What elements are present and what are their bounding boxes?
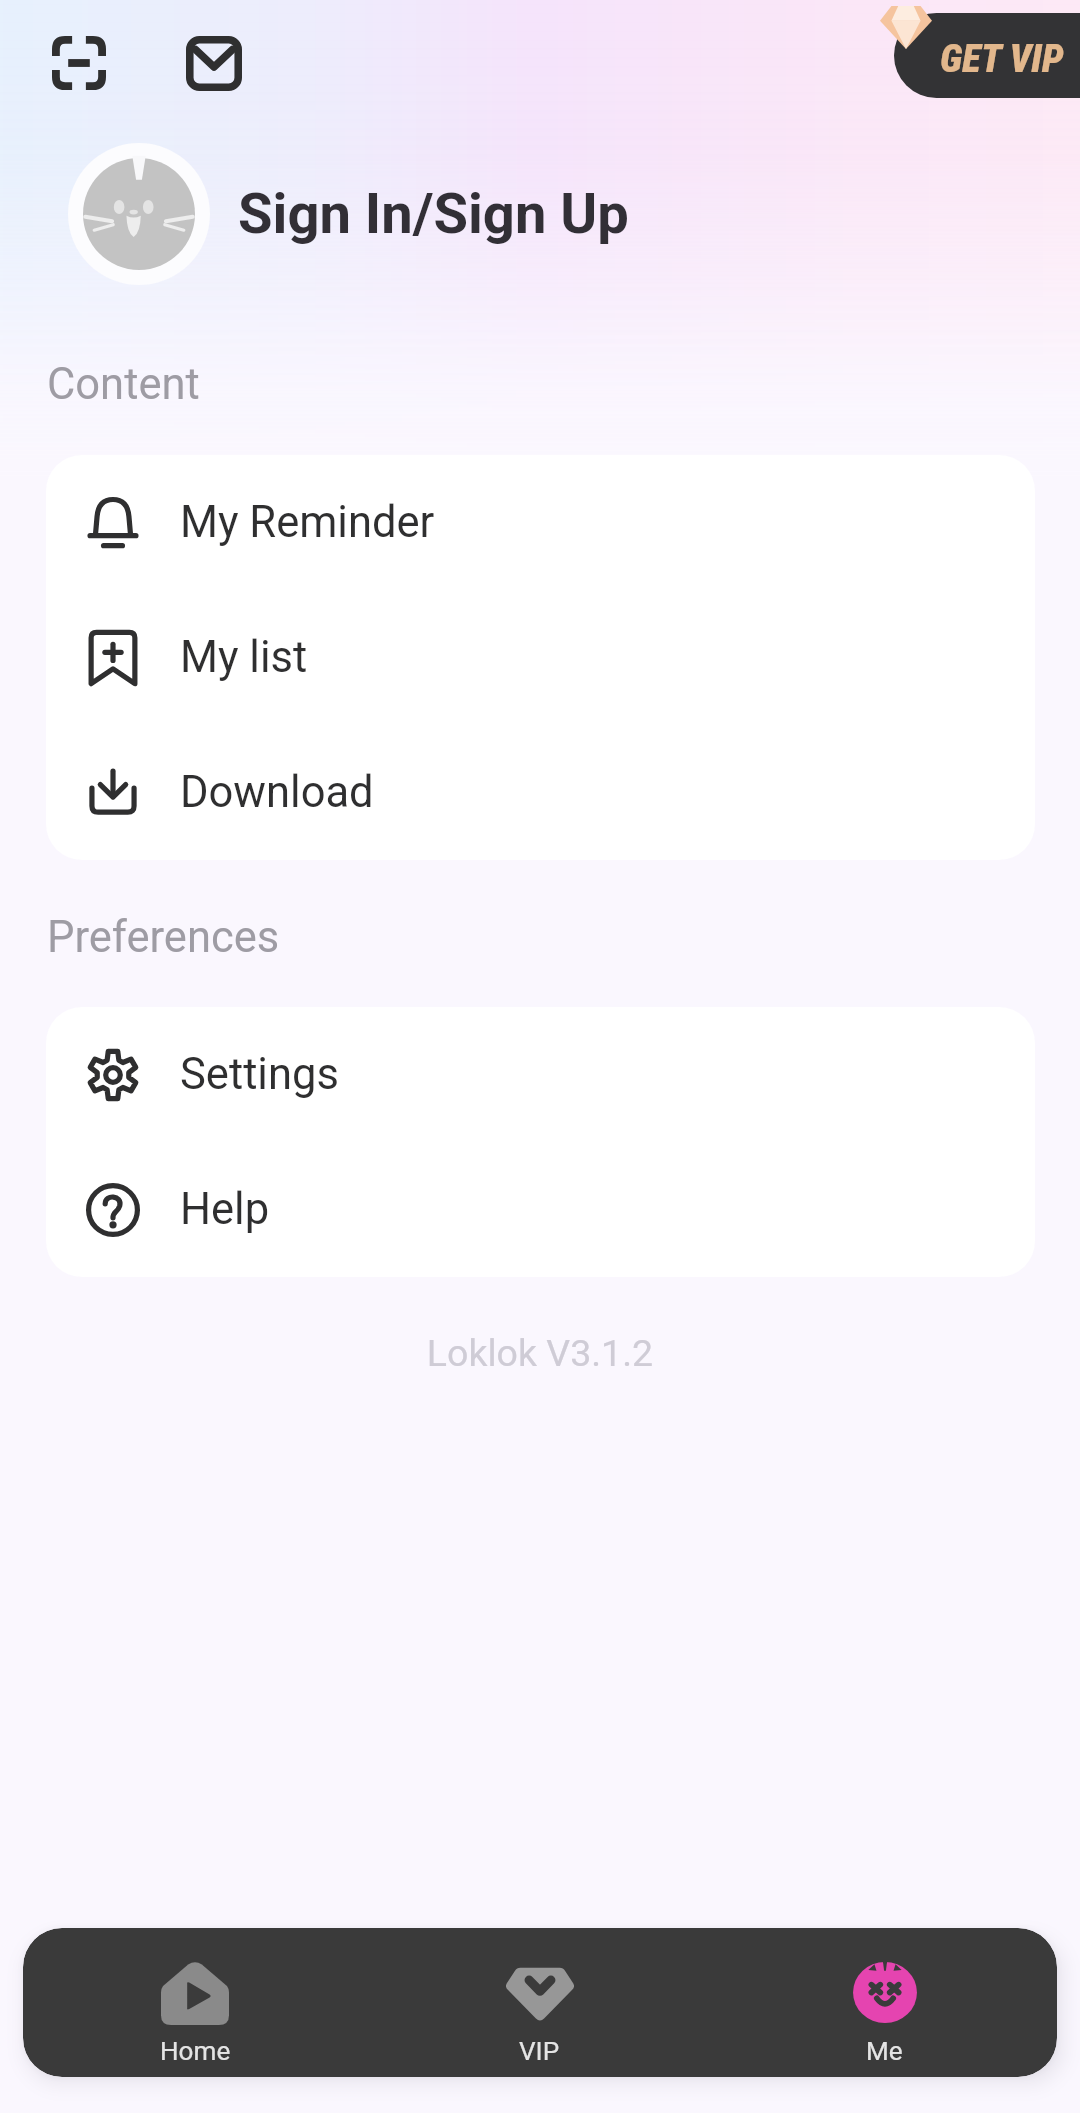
button[interactable]: Download [46, 725, 1035, 860]
button[interactable]: Me [712, 1928, 1057, 2077]
button[interactable]: Home [23, 1928, 367, 2077]
staticText: My Reminder [180, 497, 435, 548]
button[interactable]: Sign In/Sign Up [0, 143, 1080, 285]
button[interactable]: Scan [22, 6, 136, 120]
button[interactable]: VIP [367, 1928, 712, 2077]
staticText: GET VIP [940, 36, 1064, 81]
staticText: Sign In/Sign Up [238, 181, 629, 247]
staticText: Home [160, 2036, 231, 2067]
staticText: VIP [519, 2036, 560, 2067]
button[interactable]: Settings [46, 1007, 1035, 1142]
button[interactable]: GET VIP [894, 13, 1080, 98]
staticText: Download [180, 767, 374, 818]
staticText: Loklok V3.1.2 [0, 1331, 1080, 1375]
staticText: Settings [180, 1049, 339, 1100]
button[interactable]: My Reminder [46, 455, 1035, 590]
staticText: Help [180, 1184, 270, 1235]
staticText: My list [180, 632, 308, 683]
staticText: Preferences [47, 912, 280, 963]
button[interactable]: Messages [157, 6, 271, 120]
button[interactable]: My list [46, 590, 1035, 725]
button[interactable]: Help [46, 1142, 1035, 1277]
staticText: Content [47, 359, 200, 410]
staticText: Me [866, 2036, 903, 2067]
